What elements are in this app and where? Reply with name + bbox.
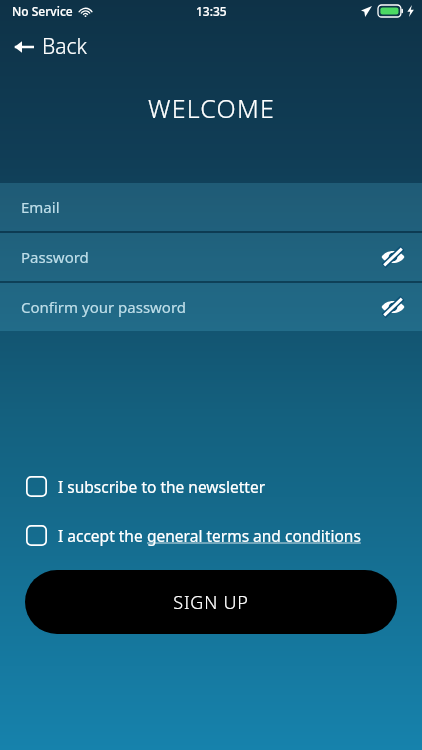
staticText: SIGN UP: [173, 590, 249, 615]
staticText: 13:35: [196, 3, 227, 19]
button[interactable]: Password: [0, 233, 422, 281]
button[interactable]: general terms and conditions: [147, 525, 361, 546]
staticText: WELCOME: [148, 91, 275, 125]
button[interactable]: Email: [0, 183, 422, 231]
button[interactable]: Show password: [376, 240, 410, 274]
staticText: I accept the: [58, 525, 147, 546]
button[interactable]: SIGN UP: [25, 570, 397, 634]
staticText: No Service: [12, 3, 73, 19]
staticText: I subscribe to the newsletter: [58, 476, 266, 497]
button[interactable]: I accept the: [18, 520, 404, 551]
staticText: Confirm your password: [21, 297, 187, 317]
staticText: Email: [21, 197, 60, 217]
button[interactable]: Confirm your password: [0, 283, 422, 331]
staticText: Password: [21, 247, 89, 267]
button[interactable]: Show password: [376, 290, 410, 324]
staticText: Back: [42, 32, 87, 61]
button[interactable]: Back: [10, 28, 91, 65]
button[interactable]: I subscribe to the newsletter: [18, 471, 404, 502]
